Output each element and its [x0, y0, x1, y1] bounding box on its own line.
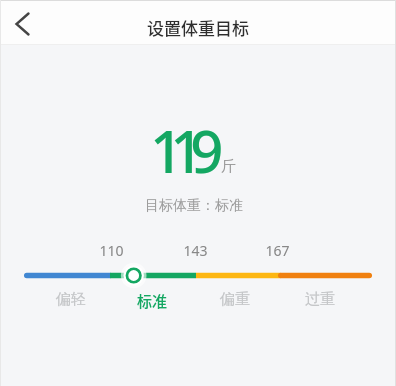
staticText: 119 [150, 111, 211, 190]
staticText: 目标体重：标准 [145, 197, 243, 215]
staticText: 偏重 [220, 290, 250, 309]
staticText: 110 [99, 241, 124, 260]
staticText: 斤 [221, 157, 236, 176]
staticText: 偏轻 [56, 290, 86, 309]
button[interactable]: 偏重 [205, 290, 265, 309]
button[interactable]: 偏轻 [41, 290, 101, 309]
staticText: 标准 [137, 290, 168, 312]
staticText: 167 [265, 241, 290, 260]
staticText: 过重 [305, 290, 335, 309]
staticText: 143 [183, 241, 208, 260]
button[interactable] [0, 0, 45, 45]
button[interactable]: 标准 [122, 290, 182, 312]
button[interactable]: 过重 [290, 290, 350, 309]
button[interactable] [0, 258, 396, 292]
staticText: 设置体重目标 [147, 15, 249, 40]
